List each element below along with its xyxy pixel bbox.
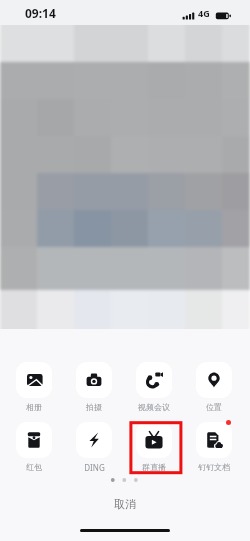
button[interactable]: 红包 [16, 422, 52, 472]
button[interactable]: 视频会议 [136, 362, 172, 412]
staticText: 拍摄 [86, 402, 102, 412]
staticText: DING [84, 462, 105, 473]
staticText: 4G [198, 7, 210, 19]
staticText: 位置 [206, 402, 222, 412]
button[interactable]: 拍摄 [76, 362, 112, 412]
staticText: 取消 [114, 497, 136, 511]
button[interactable]: 位置 [196, 362, 232, 412]
button[interactable]: 取消 [0, 490, 250, 518]
button[interactable]: 钉钉文档 [196, 422, 232, 472]
button[interactable]: 相册 [16, 362, 52, 412]
staticText: 09:14 [25, 5, 56, 21]
staticText: 视频会议 [138, 402, 170, 412]
button[interactable]: DING [76, 422, 112, 473]
staticText: 相册 [26, 402, 42, 412]
staticText: 钉钉文档 [198, 462, 230, 472]
staticText: 群直播 [142, 462, 166, 472]
staticText: 红包 [26, 462, 42, 472]
button[interactable]: 群直播 [136, 422, 172, 472]
